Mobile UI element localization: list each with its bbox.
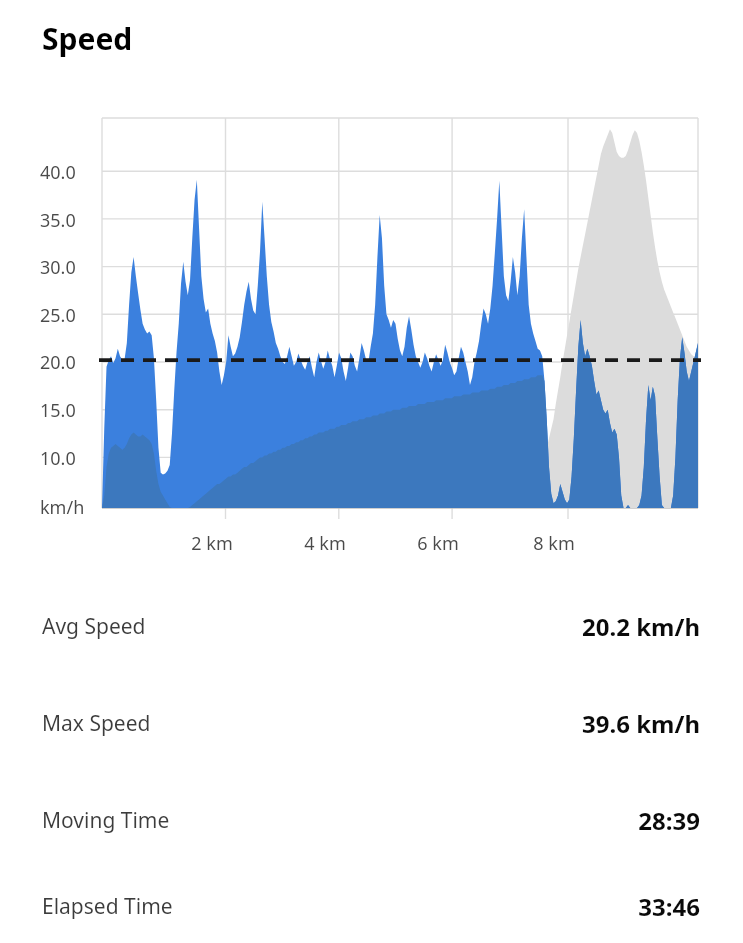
staticText: Avg Speed bbox=[42, 612, 146, 641]
staticText: 35.0 bbox=[40, 208, 76, 233]
button[interactable]: Max Speed bbox=[0, 675, 743, 772]
staticText: 28:39 bbox=[638, 804, 700, 837]
staticText: 8 km bbox=[533, 531, 575, 556]
staticText: Speed bbox=[42, 18, 133, 59]
staticText: 10.0 bbox=[40, 446, 76, 471]
button[interactable]: Elapsed Time bbox=[0, 869, 743, 943]
staticText: 25.0 bbox=[40, 303, 76, 328]
staticText: 2 km bbox=[191, 531, 233, 556]
staticText: 15.0 bbox=[40, 398, 76, 423]
staticText: 20.0 bbox=[40, 350, 76, 375]
staticText: 33:46 bbox=[638, 890, 700, 923]
staticText: 6 km bbox=[417, 531, 459, 556]
staticText: 30.0 bbox=[40, 255, 76, 280]
staticText: 39.6 km/h bbox=[581, 707, 700, 740]
button[interactable]: Avg Speed bbox=[0, 578, 743, 675]
staticText: Elapsed Time bbox=[42, 892, 173, 921]
staticText: 4 km bbox=[304, 531, 346, 556]
staticText: 40.0 bbox=[40, 160, 76, 185]
button[interactable]: Moving Time bbox=[0, 772, 743, 869]
staticText: Max Speed bbox=[42, 709, 151, 738]
staticText: 20.2 km/h bbox=[581, 610, 700, 643]
staticText: km/h bbox=[40, 495, 85, 520]
staticText: Moving Time bbox=[42, 806, 170, 835]
